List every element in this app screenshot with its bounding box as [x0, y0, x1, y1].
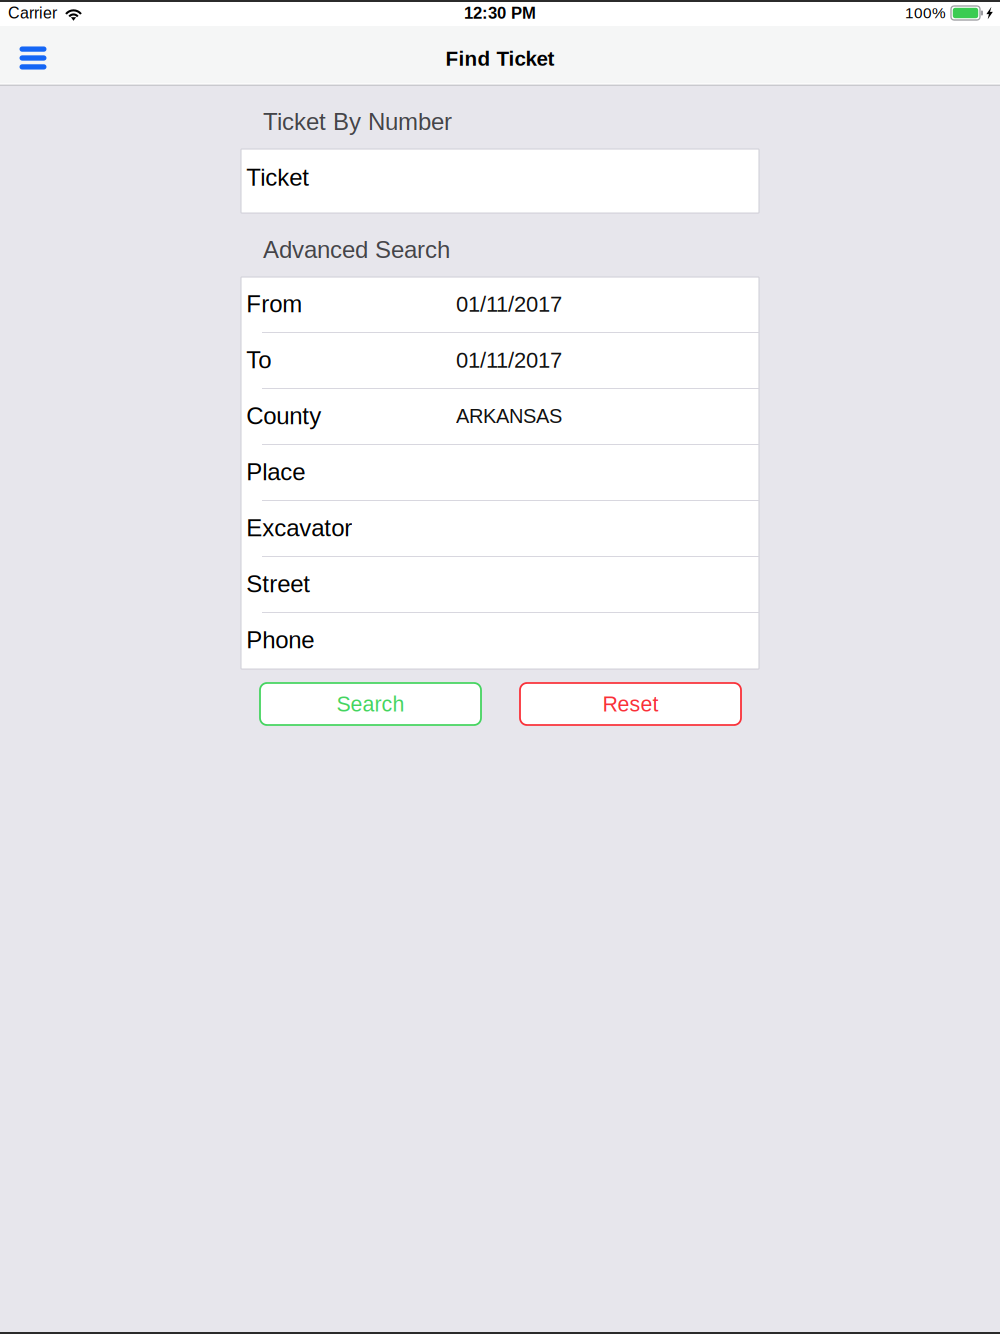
button[interactable]: To [241, 333, 759, 389]
staticText: Carrier [8, 4, 57, 22]
button[interactable]: County [241, 389, 759, 445]
button[interactable]: Search [260, 683, 481, 725]
button[interactable]: Excavator [241, 501, 759, 557]
staticText: 100% [905, 4, 946, 21]
staticText: 01/11/2017 [456, 292, 562, 316]
staticText: County [246, 403, 321, 429]
staticText: Ticket [246, 164, 309, 191]
button[interactable]: Menu [0, 26, 66, 86]
staticText: Phone [246, 627, 314, 653]
staticText: Excavator [246, 515, 352, 541]
button[interactable]: From [241, 277, 759, 333]
button[interactable]: Phone [241, 613, 759, 669]
staticText: From [246, 291, 302, 317]
staticText: Street [246, 571, 310, 597]
button[interactable]: Place [241, 445, 759, 501]
button[interactable]: Reset [520, 683, 741, 725]
staticText: ARKANSAS [456, 405, 562, 427]
button[interactable]: Ticket [241, 149, 759, 213]
staticText: Advanced Search [263, 236, 450, 263]
staticText: Place [246, 459, 305, 485]
staticText: Ticket By Number [263, 108, 452, 135]
staticText: Search [336, 692, 404, 716]
staticText: 12:30 PM [464, 4, 536, 22]
button[interactable]: Street [241, 557, 759, 613]
staticText: Find Ticket [445, 47, 554, 70]
staticText: Reset [602, 692, 658, 716]
staticText: To [246, 347, 271, 373]
staticText: 01/11/2017 [456, 348, 562, 372]
